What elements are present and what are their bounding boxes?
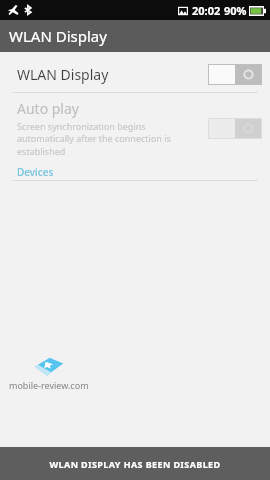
- staticText: WLAN DISPLAY HAS BEEN DISABLED: [0, 458, 270, 470]
- staticText: mobile-review.com: [9, 379, 89, 391]
- staticText: Devices: [17, 165, 54, 179]
- staticText: WLAN Display: [17, 65, 109, 84]
- button[interactable]: Devices: [0, 164, 270, 180]
- staticText: Auto play: [17, 99, 79, 118]
- staticText: 90%: [224, 3, 247, 18]
- staticText: 20:02: [192, 3, 221, 18]
- button[interactable]: WLAN Display: [0, 59, 270, 89]
- button[interactable]: Toggle: [208, 118, 262, 139]
- button[interactable]: Auto play: [0, 99, 270, 158]
- staticText: Screen synchronization begins automatica…: [17, 120, 202, 158]
- staticText: WLAN Display: [9, 26, 107, 46]
- button[interactable]: Toggle: [208, 64, 262, 85]
